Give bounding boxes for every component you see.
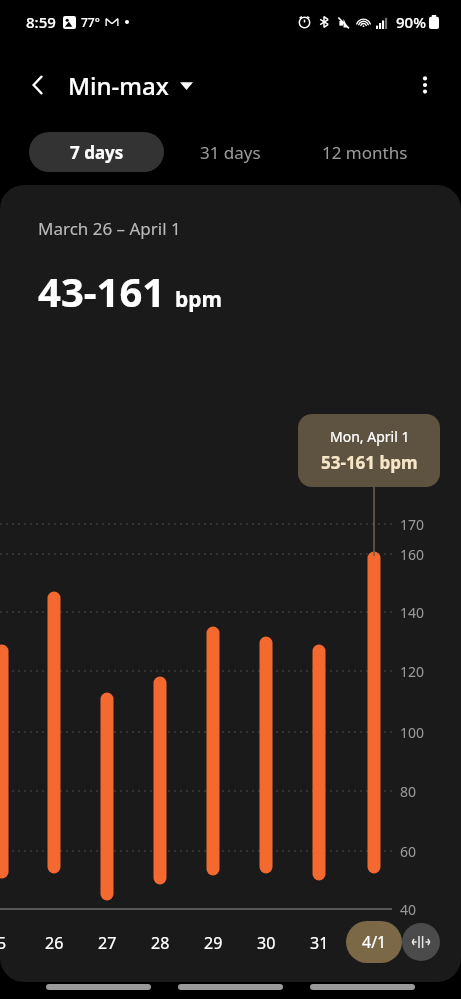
staticText: 12 months <box>322 141 408 164</box>
button[interactable]: 31 days <box>175 132 285 172</box>
staticText: 28 <box>151 932 170 952</box>
staticText: 140 <box>400 603 425 621</box>
staticText: 4/1 <box>362 931 387 953</box>
staticText: 5 <box>0 932 7 952</box>
button[interactable]: More options <box>401 61 449 109</box>
staticText: 26 <box>45 932 64 952</box>
staticText: bpm <box>175 285 223 314</box>
button[interactable]: Adjust range <box>402 923 440 961</box>
staticText: 31 <box>310 932 329 952</box>
staticText: 53-161 bpm <box>321 451 418 474</box>
staticText: 60 <box>400 842 417 860</box>
staticText: 7 days <box>70 141 124 164</box>
staticText: 120 <box>400 662 425 680</box>
staticText: Mon, April 1 <box>330 427 410 446</box>
staticText: 29 <box>204 932 223 952</box>
button[interactable]: Mon, April 1 <box>298 414 440 487</box>
staticText: 30 <box>257 932 276 952</box>
staticText: 31 days <box>200 141 261 164</box>
staticText: Min-max <box>68 69 169 102</box>
staticText: 77° <box>81 14 100 30</box>
staticText: 90% <box>396 12 426 32</box>
staticText: 100 <box>400 723 425 741</box>
staticText: 40 <box>400 900 417 918</box>
button[interactable]: Back <box>14 61 62 109</box>
staticText: 27 <box>98 932 117 952</box>
button[interactable]: Recents <box>46 984 151 990</box>
button[interactable]: Min-max <box>64 65 197 106</box>
staticText: 170 <box>400 515 425 533</box>
button[interactable]: Home <box>178 984 283 990</box>
staticText: March 26 – April 1 <box>38 217 181 240</box>
staticText: 80 <box>400 782 417 800</box>
staticText: 8:59 <box>26 12 56 32</box>
staticText: 160 <box>400 545 425 563</box>
button[interactable]: Back <box>310 984 415 990</box>
button[interactable]: 4/1 <box>346 921 402 963</box>
button[interactable]: 12 months <box>295 132 435 172</box>
staticText: 43-161 <box>38 264 166 318</box>
button[interactable]: 7 days <box>29 132 164 172</box>
